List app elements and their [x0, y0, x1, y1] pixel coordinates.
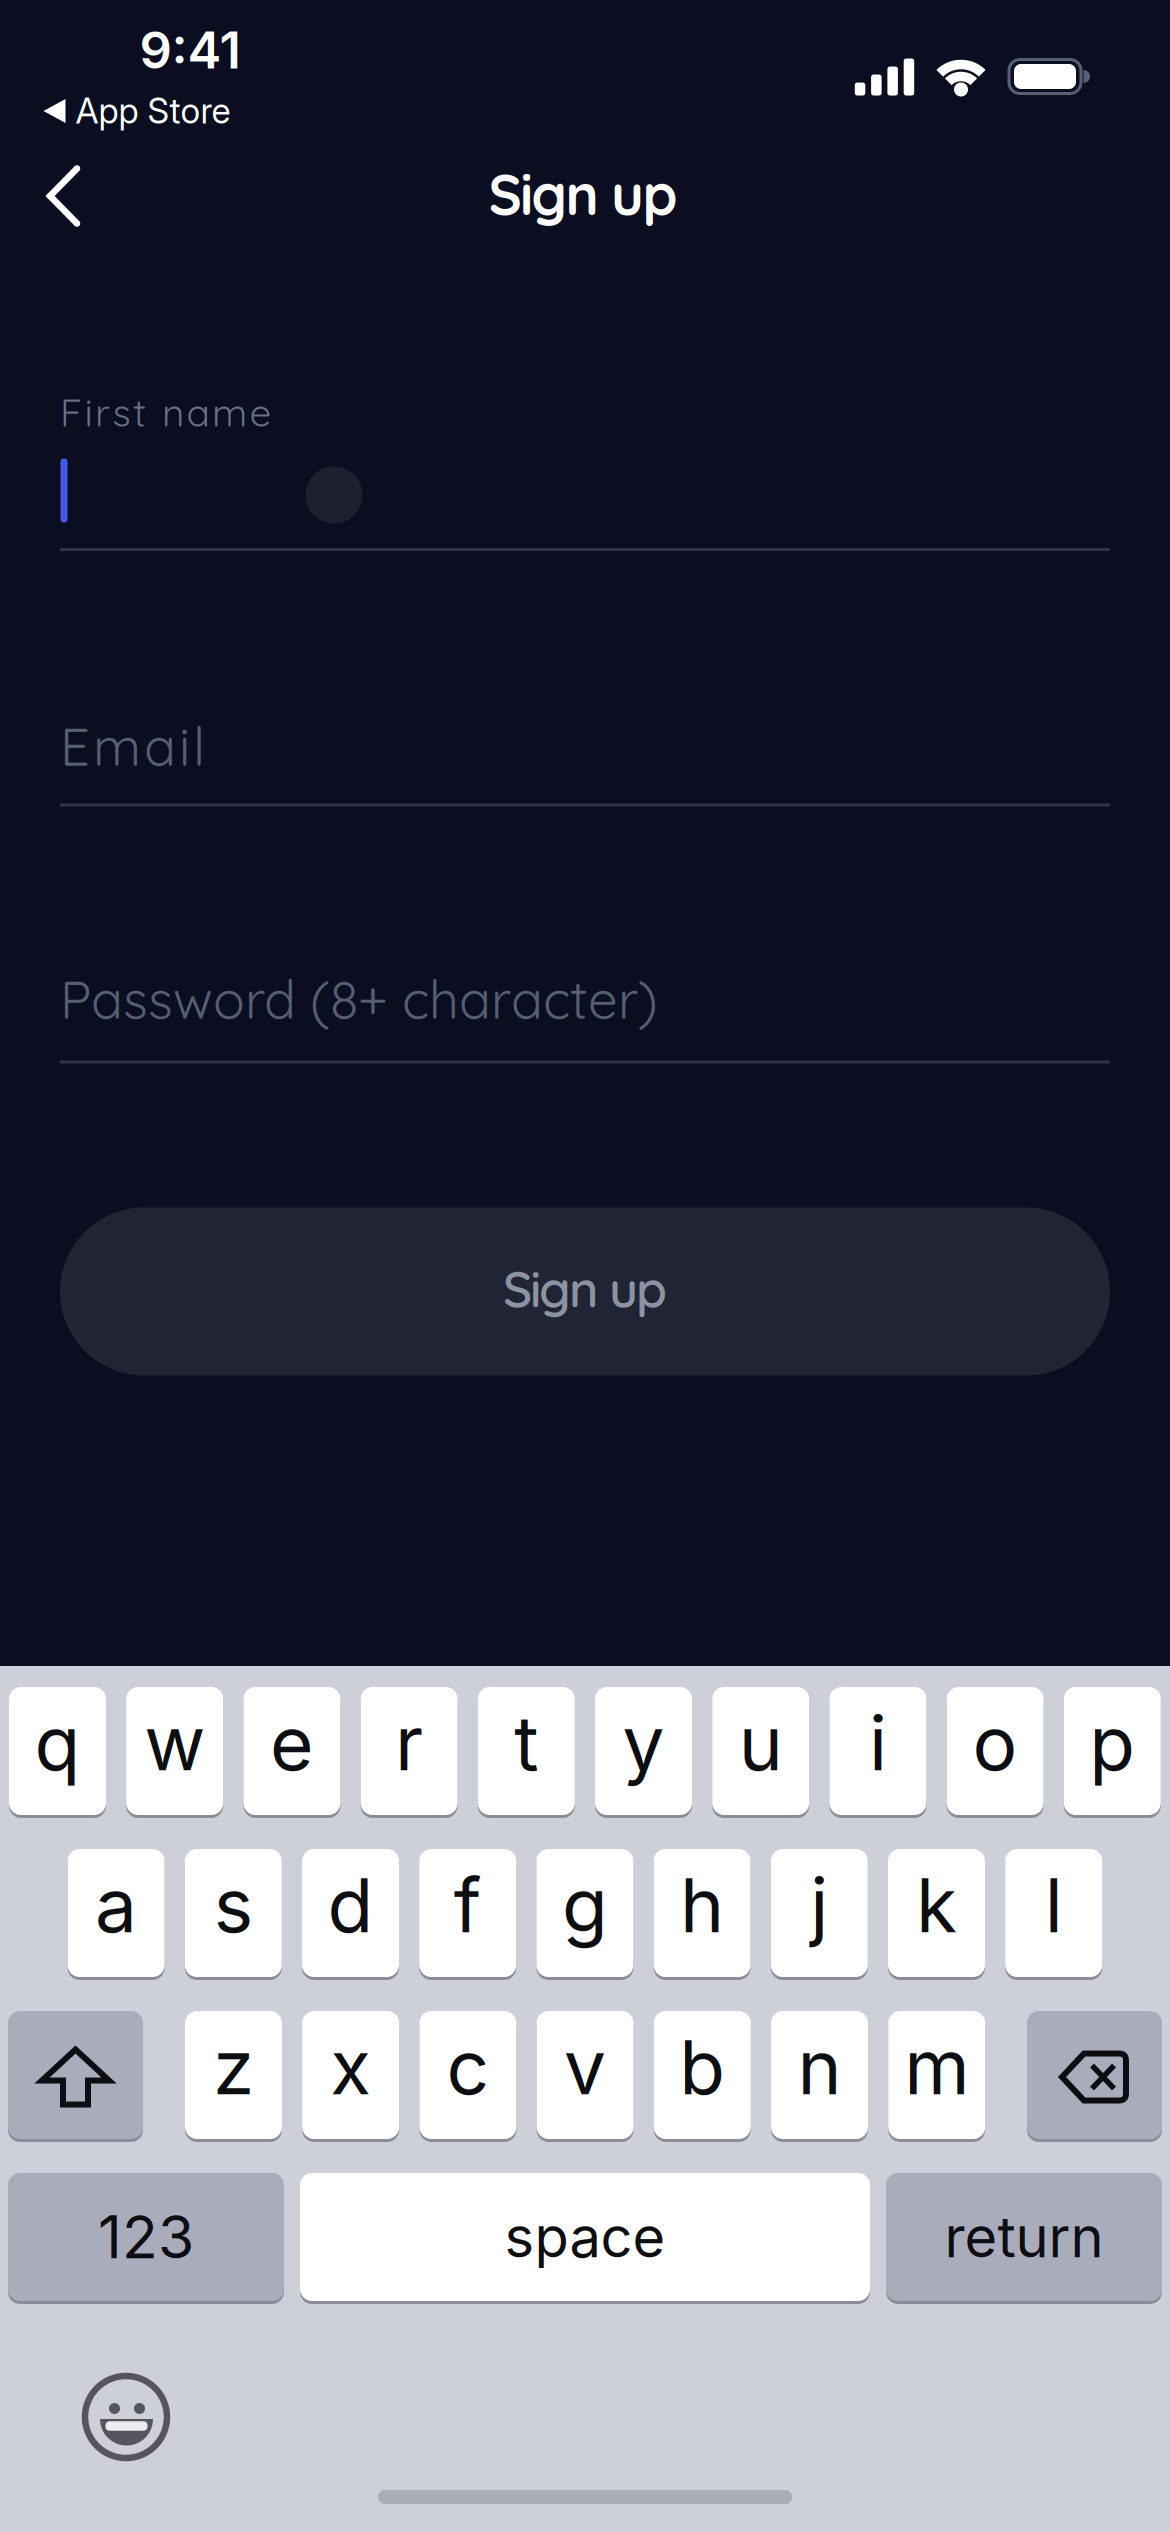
button[interactable]: return: [886, 2173, 1162, 2301]
button[interactable]: v: [537, 2011, 634, 2139]
staticText: j: [810, 1860, 828, 1950]
staticText: Email: [60, 713, 205, 779]
staticText: k: [916, 1860, 957, 1950]
staticText: h: [680, 1860, 724, 1950]
button[interactable]: c: [419, 2011, 516, 2139]
button[interactable]: Shift: [8, 2011, 143, 2139]
button[interactable]: w: [126, 1687, 223, 1815]
staticText: b: [679, 2022, 725, 2112]
button[interactable]: 123: [8, 2173, 284, 2301]
staticText: u: [739, 1698, 783, 1788]
staticText: z: [213, 2022, 254, 2112]
button[interactable]: g: [536, 1849, 633, 1977]
staticText: s: [214, 1860, 253, 1950]
button[interactable]: h: [654, 1849, 751, 1977]
staticText: 9:41: [139, 19, 240, 81]
staticText: f: [454, 1860, 482, 1950]
staticText: First name: [60, 388, 271, 436]
staticText: e: [270, 1698, 314, 1788]
button[interactable]: space: [300, 2173, 870, 2301]
button[interactable]: y: [595, 1687, 692, 1815]
staticText: g: [562, 1860, 608, 1950]
button[interactable]: r: [361, 1687, 458, 1815]
staticText: o: [973, 1698, 1018, 1788]
button[interactable]: i: [829, 1687, 926, 1815]
staticText: p: [1089, 1698, 1135, 1788]
button[interactable]: o: [947, 1687, 1044, 1815]
button[interactable]: Emoji: [79, 2370, 173, 2464]
staticText: r: [395, 1698, 423, 1788]
staticText: return: [944, 2203, 1103, 2271]
staticText: App Store: [75, 90, 230, 132]
staticText: Sign up: [489, 159, 677, 229]
staticText: Sign up: [503, 1257, 667, 1320]
button[interactable]: s: [185, 1849, 282, 1977]
button[interactable]: t: [478, 1687, 575, 1815]
staticText: l: [1045, 1860, 1063, 1950]
button[interactable]: q: [9, 1687, 106, 1815]
button[interactable]: f: [419, 1849, 516, 1977]
button[interactable]: x: [302, 2011, 399, 2139]
staticText: 123: [98, 2201, 194, 2272]
button[interactable]: j: [771, 1849, 868, 1977]
button[interactable]: First name: [0, 380, 1170, 570]
staticText: a: [95, 1860, 137, 1950]
staticText: x: [330, 2022, 371, 2112]
button[interactable]: k: [888, 1849, 985, 1977]
button[interactable]: p: [1064, 1687, 1161, 1815]
staticText: w: [144, 1698, 205, 1788]
button[interactable]: Email: [0, 700, 1170, 820]
button[interactable]: u: [712, 1687, 809, 1815]
button[interactable]: Back: [46, 165, 81, 227]
button[interactable]: Sign up: [60, 1207, 1110, 1375]
staticText: m: [904, 2022, 969, 2112]
staticText: i: [869, 1698, 887, 1788]
staticText: t: [514, 1698, 538, 1788]
staticText: q: [34, 1698, 80, 1788]
button[interactable]: Back to App Store: [43, 90, 230, 132]
button[interactable]: e: [243, 1687, 340, 1815]
button[interactable]: m: [888, 2011, 985, 2139]
staticText: c: [446, 2022, 489, 2112]
staticText: Password (8+ character): [60, 966, 658, 1032]
button[interactable]: a: [68, 1849, 165, 1977]
button[interactable]: Password (8+ character): [0, 957, 1170, 1077]
staticText: n: [797, 2022, 841, 2112]
button[interactable]: z: [185, 2011, 282, 2139]
button[interactable]: l: [1005, 1849, 1102, 1977]
button[interactable]: b: [654, 2011, 751, 2139]
button[interactable]: n: [771, 2011, 868, 2139]
staticText: v: [564, 2022, 606, 2112]
staticText: y: [622, 1698, 664, 1788]
staticText: d: [327, 1860, 373, 1950]
button[interactable]: Delete: [1027, 2011, 1162, 2139]
button[interactable]: d: [302, 1849, 399, 1977]
staticText: space: [504, 2203, 665, 2271]
